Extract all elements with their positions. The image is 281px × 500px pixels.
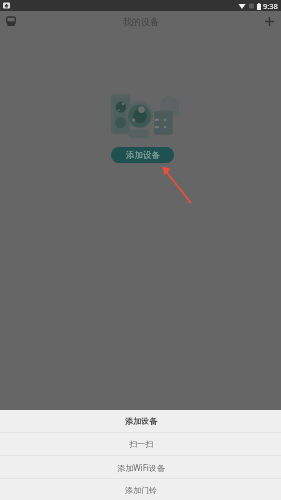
staticText: 添加设备 <box>125 416 157 426</box>
button[interactable]: My devices <box>1 12 20 31</box>
staticText: 我的设备 <box>123 16 159 27</box>
button[interactable]: 添加设备 <box>0 410 281 432</box>
staticText: 添加WiFi设备 <box>117 462 165 473</box>
button[interactable]: Add device <box>260 12 279 31</box>
button[interactable]: 添加设备 <box>111 147 174 163</box>
button[interactable]: 添加WiFi设备 <box>0 456 281 478</box>
button[interactable]: 扫一扫 <box>0 433 281 455</box>
staticText: 9:38 <box>263 1 278 11</box>
staticText: 扫一扫 <box>129 439 153 449</box>
button[interactable]: 添加门铃 <box>0 479 281 500</box>
staticText: 添加设备 <box>126 150 160 161</box>
staticText: 添加门铃 <box>125 485 157 495</box>
